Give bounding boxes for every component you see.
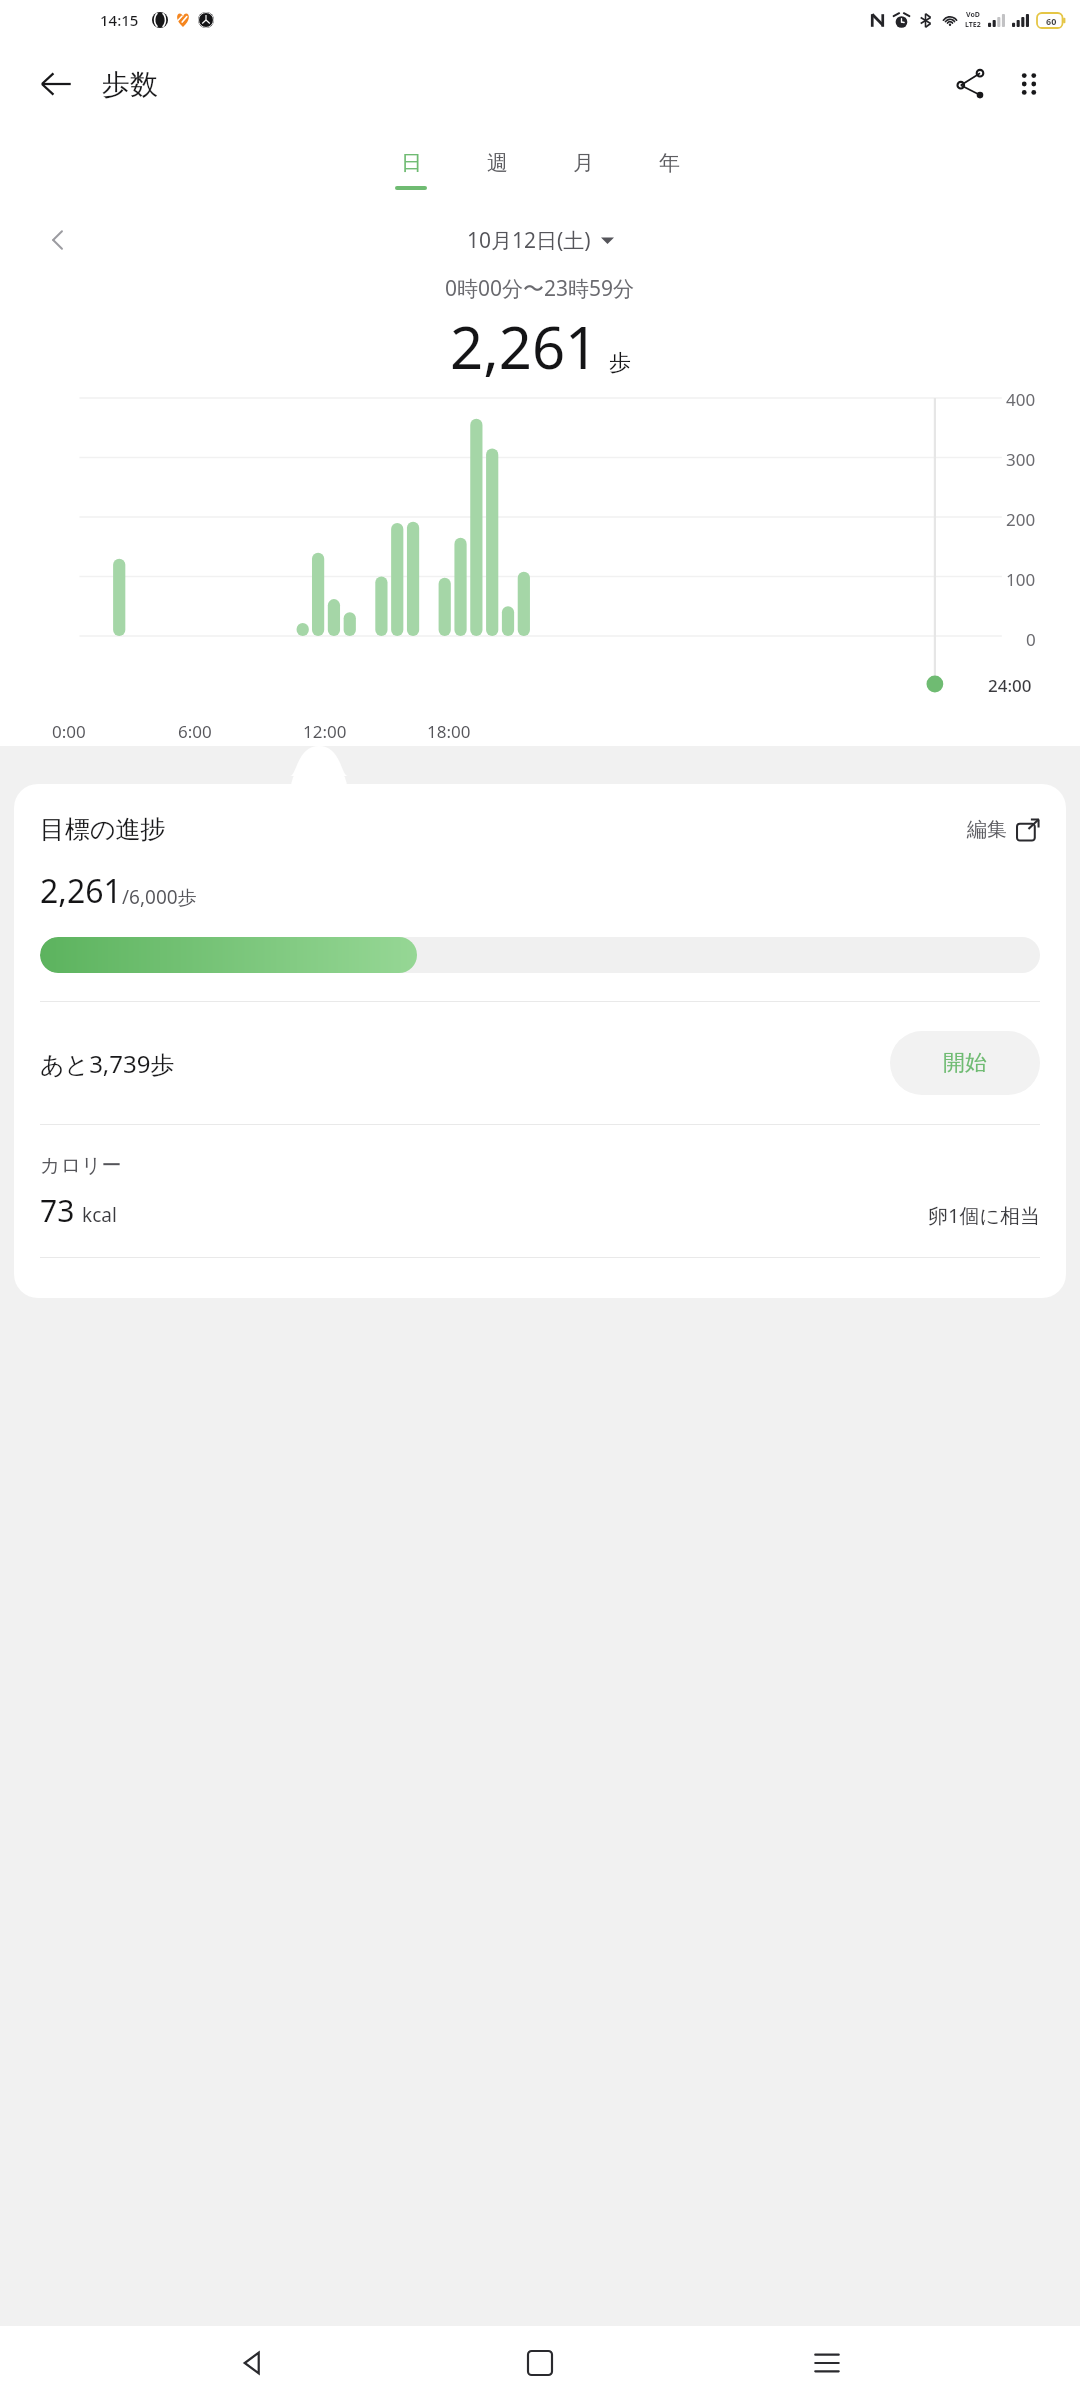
staticText: kcal (82, 1202, 117, 1228)
staticText: 6:00 (178, 720, 212, 743)
button[interactable]: Home (506, 2329, 574, 2397)
staticText: 24:00 (988, 674, 1032, 697)
staticText: 60 (1046, 15, 1057, 27)
staticText: 日 (401, 150, 422, 176)
button[interactable]: 週 (454, 128, 540, 214)
staticText: 10月12日(土) (467, 226, 591, 255)
staticText: カロリー (40, 1153, 122, 1178)
staticText: 0 (1026, 628, 1036, 651)
staticText: 0:00 (52, 720, 86, 743)
staticText: 300 (1006, 448, 1036, 471)
staticText: 73 (40, 1190, 75, 1231)
staticText: 目標の進捗 (40, 814, 166, 845)
staticText: 200 (1006, 508, 1036, 531)
button[interactable]: Back (26, 54, 86, 114)
button[interactable]: Back (219, 2329, 287, 2397)
button[interactable]: Menu (793, 2329, 861, 2397)
staticText: 歩数 (102, 67, 158, 102)
button[interactable]: 年 (626, 128, 712, 214)
staticText: /6,000歩 (122, 884, 197, 910)
staticText: 18:00 (427, 720, 471, 743)
button[interactable]: More options (1000, 55, 1058, 113)
button[interactable]: Previous day (34, 216, 82, 264)
staticText: 卵1個に相当 (928, 1202, 1040, 1229)
staticText: 週 (487, 150, 508, 176)
staticText: 100 (1006, 568, 1036, 591)
staticText: 月 (573, 150, 594, 176)
button[interactable]: 開始 (890, 1031, 1040, 1095)
button[interactable]: 日 (368, 128, 454, 214)
staticText: LTE2 (965, 20, 981, 30)
staticText: 400 (1006, 388, 1036, 411)
staticText: 開始 (943, 1049, 987, 1077)
staticText: 年 (659, 150, 680, 176)
staticText: あと3,739歩 (40, 1047, 175, 1080)
button[interactable]: 月 (540, 128, 626, 214)
staticText: 12:00 (303, 720, 347, 743)
staticText: 2,261 (40, 869, 122, 913)
button[interactable]: Share (942, 55, 1000, 113)
staticText: 編集 (967, 817, 1007, 842)
button[interactable]: 10月12日(土) (467, 226, 614, 255)
button[interactable]: 編集 (967, 817, 1040, 842)
staticText: 歩 (609, 349, 631, 377)
staticText: 14:15 (100, 10, 139, 30)
staticText: 0時00分〜23時59分 (445, 274, 635, 303)
staticText: 2,261 (450, 307, 599, 386)
staticText: VoD (966, 10, 980, 20)
